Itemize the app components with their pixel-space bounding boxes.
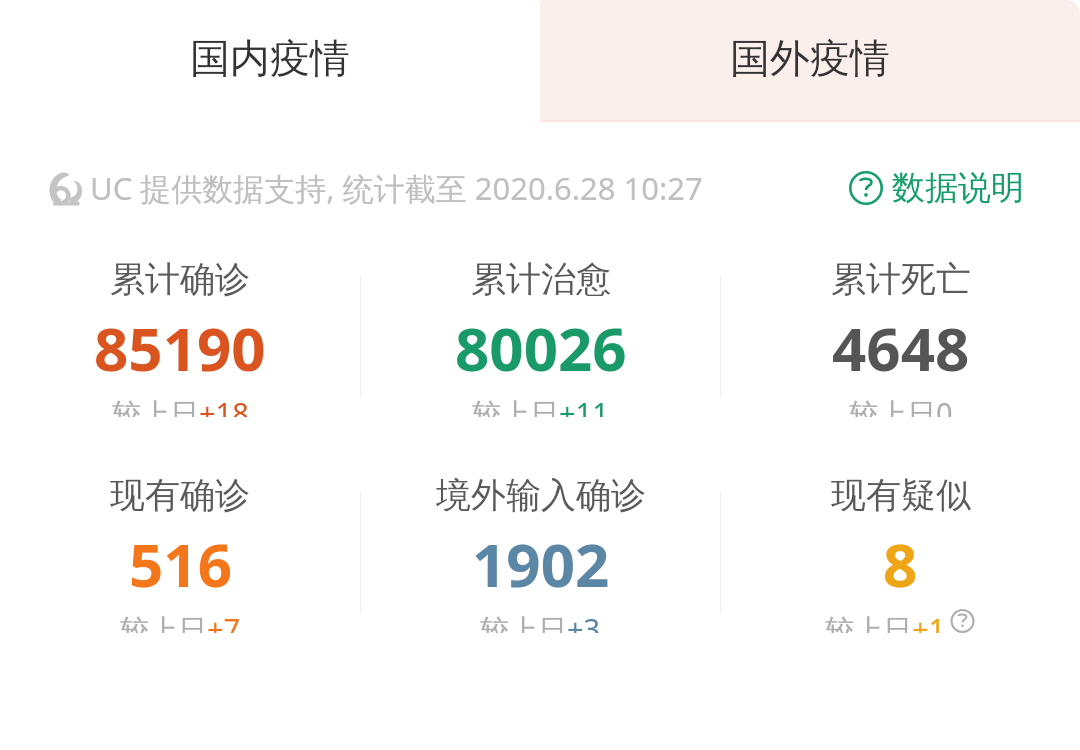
staticText: 4648 — [832, 307, 970, 389]
staticText: 较上日+11 — [472, 393, 609, 417]
staticText: 数据说明 — [892, 167, 1024, 209]
staticText: 较上日+3 — [480, 609, 601, 633]
button[interactable]: 国外疫情 — [540, 0, 1080, 122]
button[interactable]: 现有确诊 — [0, 473, 360, 633]
staticText: 境外输入确诊 — [436, 473, 646, 517]
button[interactable]: 数据说明 — [849, 167, 1024, 209]
button[interactable]: 境外输入确诊 — [361, 473, 720, 633]
staticText: 累计死亡 — [831, 257, 971, 301]
staticText: 累计治愈 — [471, 257, 611, 301]
button[interactable]: 累计确诊 — [0, 257, 360, 417]
button[interactable]: 现有疑似 — [721, 473, 1080, 633]
staticText: 现有疑似 — [831, 473, 971, 517]
staticText: 较上日0 — [849, 393, 953, 417]
staticText: UC 提供数据支持, 统计截至 2020.6.28 10:27 — [90, 167, 703, 209]
staticText: 85190 — [94, 307, 266, 389]
staticText: 80026 — [455, 307, 627, 389]
other: 数据说明 — [849, 171, 883, 205]
button[interactable]: 累计死亡 — [721, 257, 1080, 417]
staticText: 516 — [129, 523, 232, 605]
staticText: 现有确诊 — [110, 473, 250, 517]
staticText: 较上日+18 — [112, 393, 249, 417]
staticText: 较上日+7 — [120, 609, 241, 633]
other: 说明 — [949, 609, 976, 633]
staticText: 1902 — [472, 523, 610, 605]
staticText: 国外疫情 — [730, 33, 890, 83]
button[interactable]: 国内疫情 — [0, 0, 540, 122]
staticText: 8 — [883, 523, 918, 605]
staticText: 累计确诊 — [110, 257, 250, 301]
staticText: 较上日+1 — [825, 609, 946, 633]
button[interactable]: 累计治愈 — [361, 257, 720, 417]
staticText: 国内疫情 — [190, 33, 350, 83]
